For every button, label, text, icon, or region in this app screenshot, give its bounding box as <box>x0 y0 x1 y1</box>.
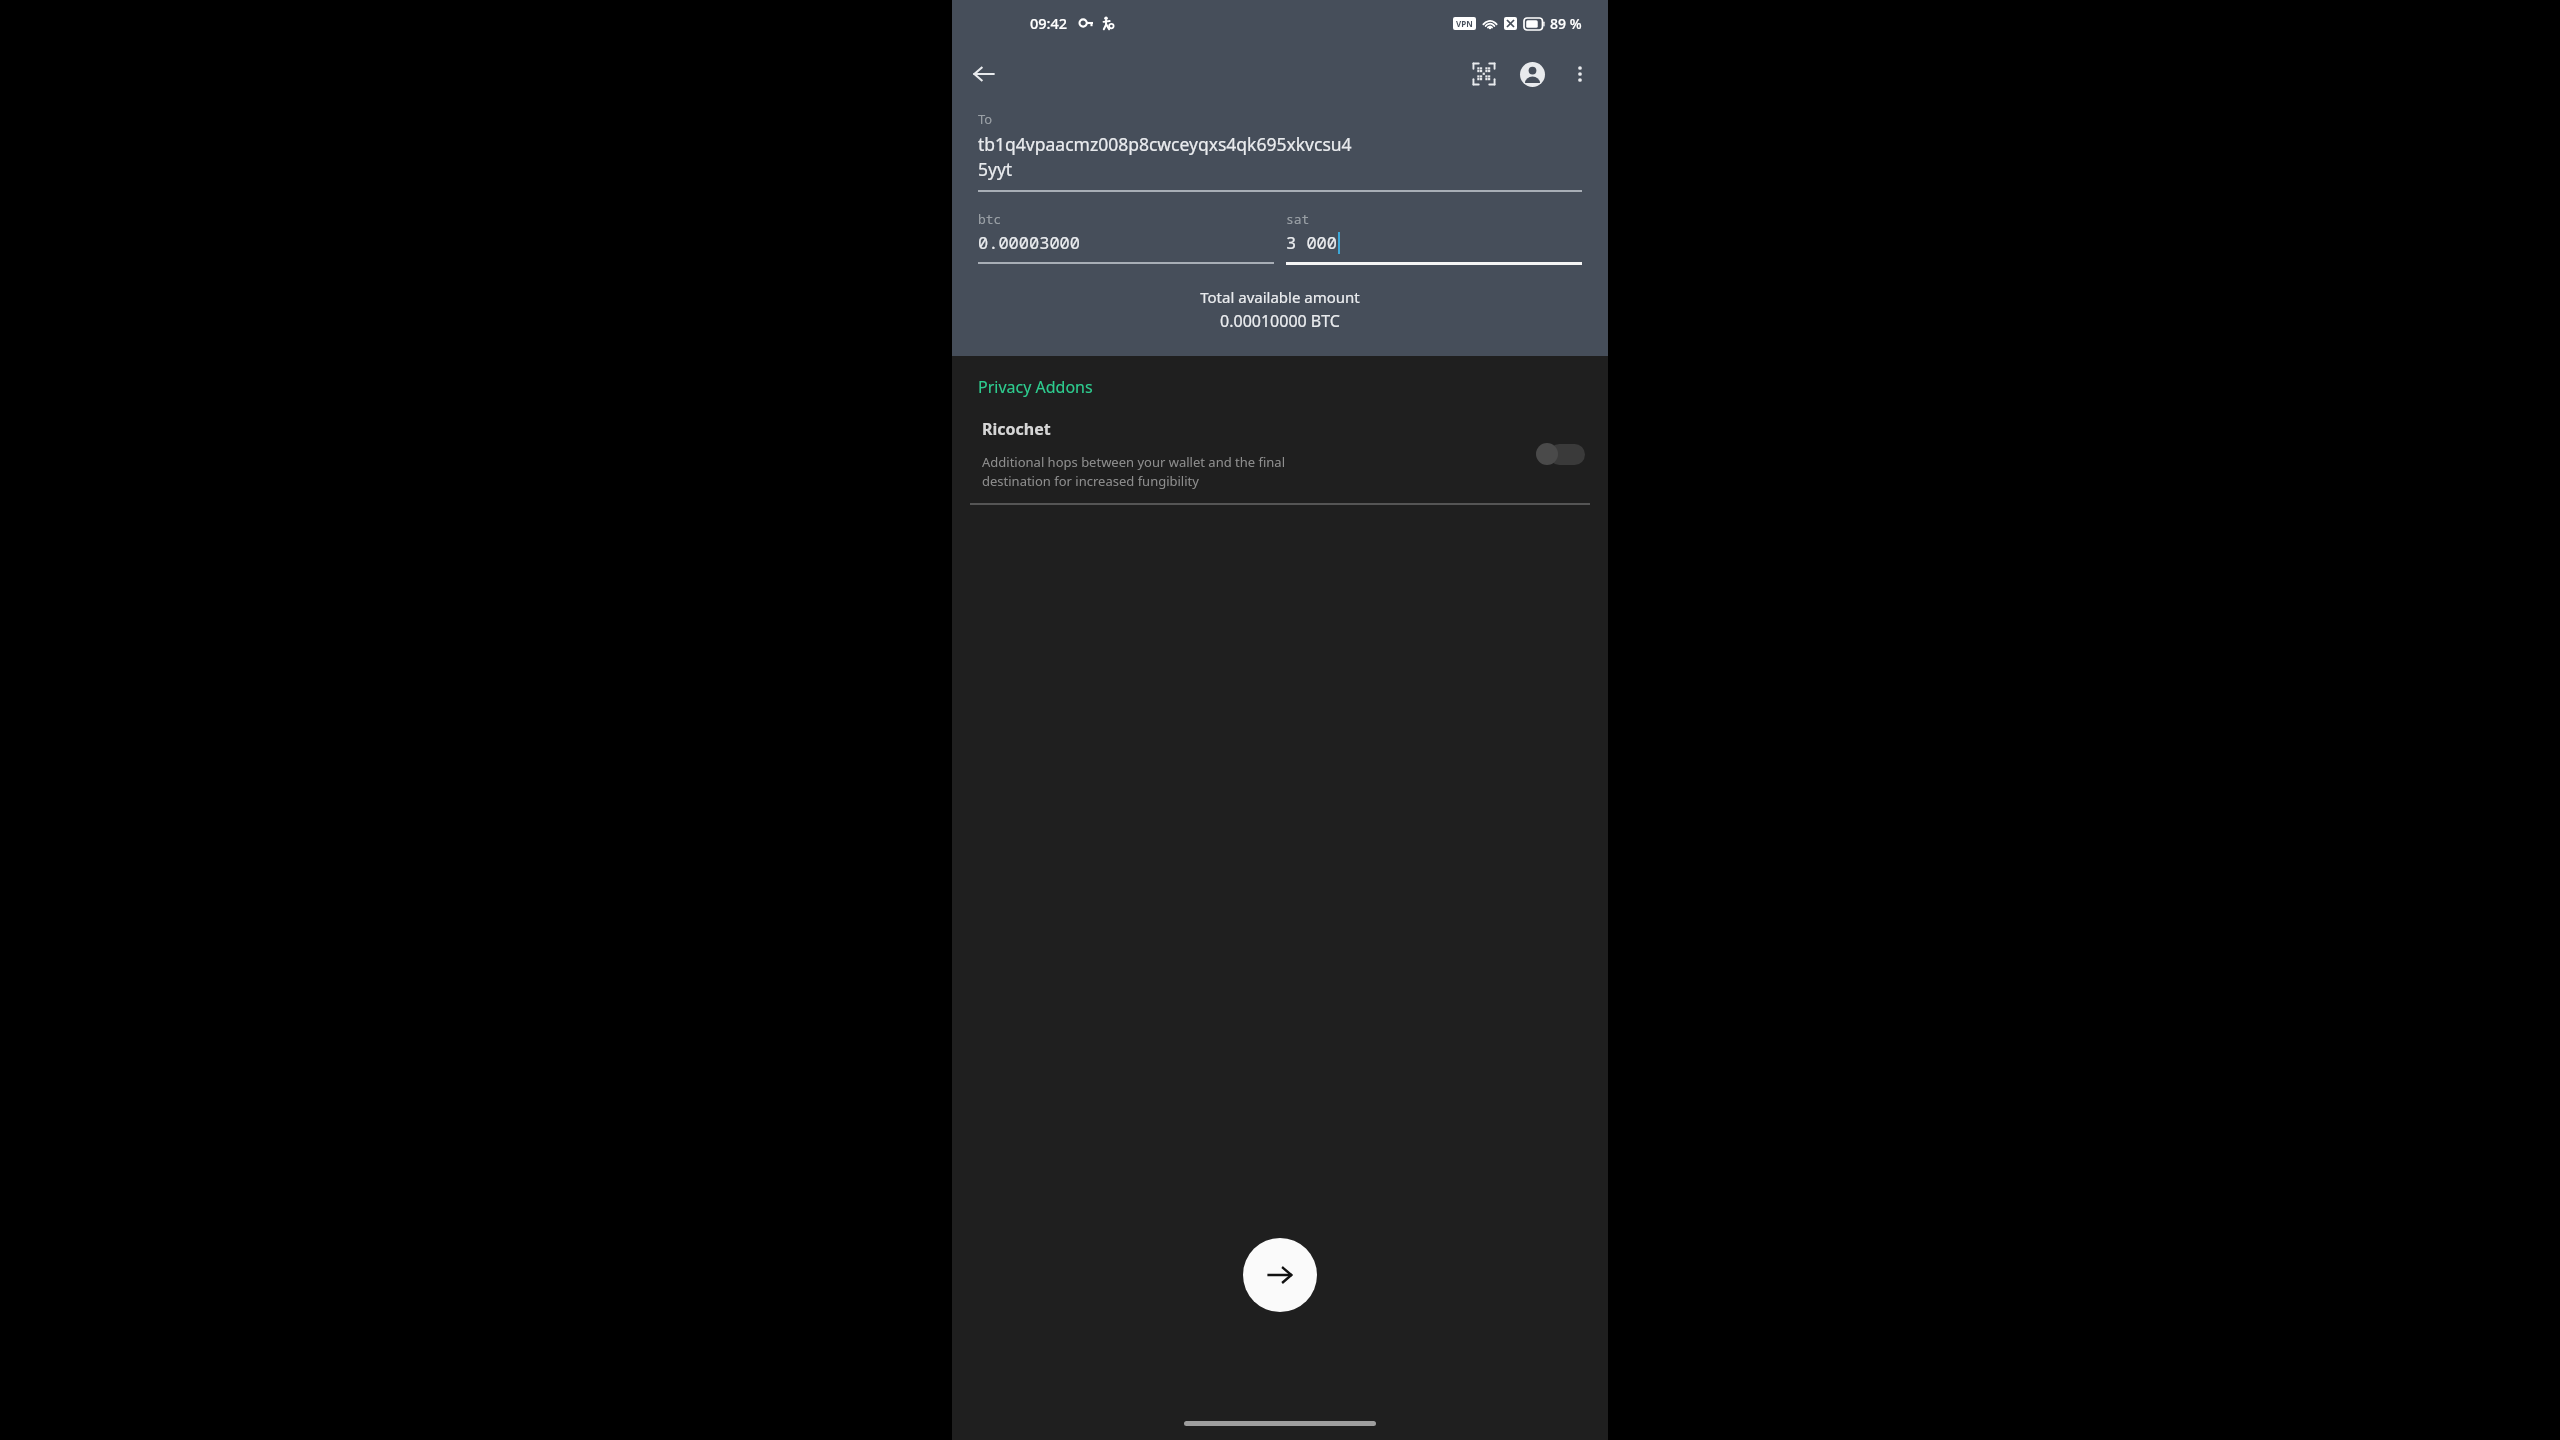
staticText: Ricochet <box>982 418 1051 440</box>
staticText: To <box>978 110 993 128</box>
staticText: VPN <box>1456 18 1473 29</box>
button[interactable]: btc <box>978 210 1274 264</box>
button[interactable]: To <box>978 110 1582 192</box>
button[interactable]: Account <box>1508 50 1556 98</box>
staticText: Total available amount <box>1200 287 1360 307</box>
staticText: 3 000 <box>1286 231 1337 254</box>
button[interactable]: Back <box>960 50 1008 98</box>
button[interactable]: Next <box>1243 1238 1317 1312</box>
staticText: 0.00010000 BTC <box>1220 310 1340 332</box>
staticText: btc <box>978 210 1002 228</box>
staticText: 0.00003000 <box>978 231 1080 254</box>
button[interactable]: Scan QR code <box>1460 50 1508 98</box>
button[interactable]: sat <box>1286 210 1582 265</box>
staticText: 09:42 <box>1030 13 1068 33</box>
staticText: tb1q4vpaacmz008p8cwceyqxs4qk695xkvcsu4 5… <box>978 132 1352 181</box>
staticText: Additional hops between your wallet and … <box>982 453 1285 490</box>
button[interactable]: Ricochet <box>952 418 1608 490</box>
button[interactable]: More options <box>1556 50 1604 98</box>
staticText: 89 % <box>1550 14 1582 33</box>
button[interactable]: Toggle Ricochet <box>1534 437 1586 471</box>
staticText: Privacy Addons <box>978 376 1093 398</box>
staticText: sat <box>1286 210 1310 228</box>
